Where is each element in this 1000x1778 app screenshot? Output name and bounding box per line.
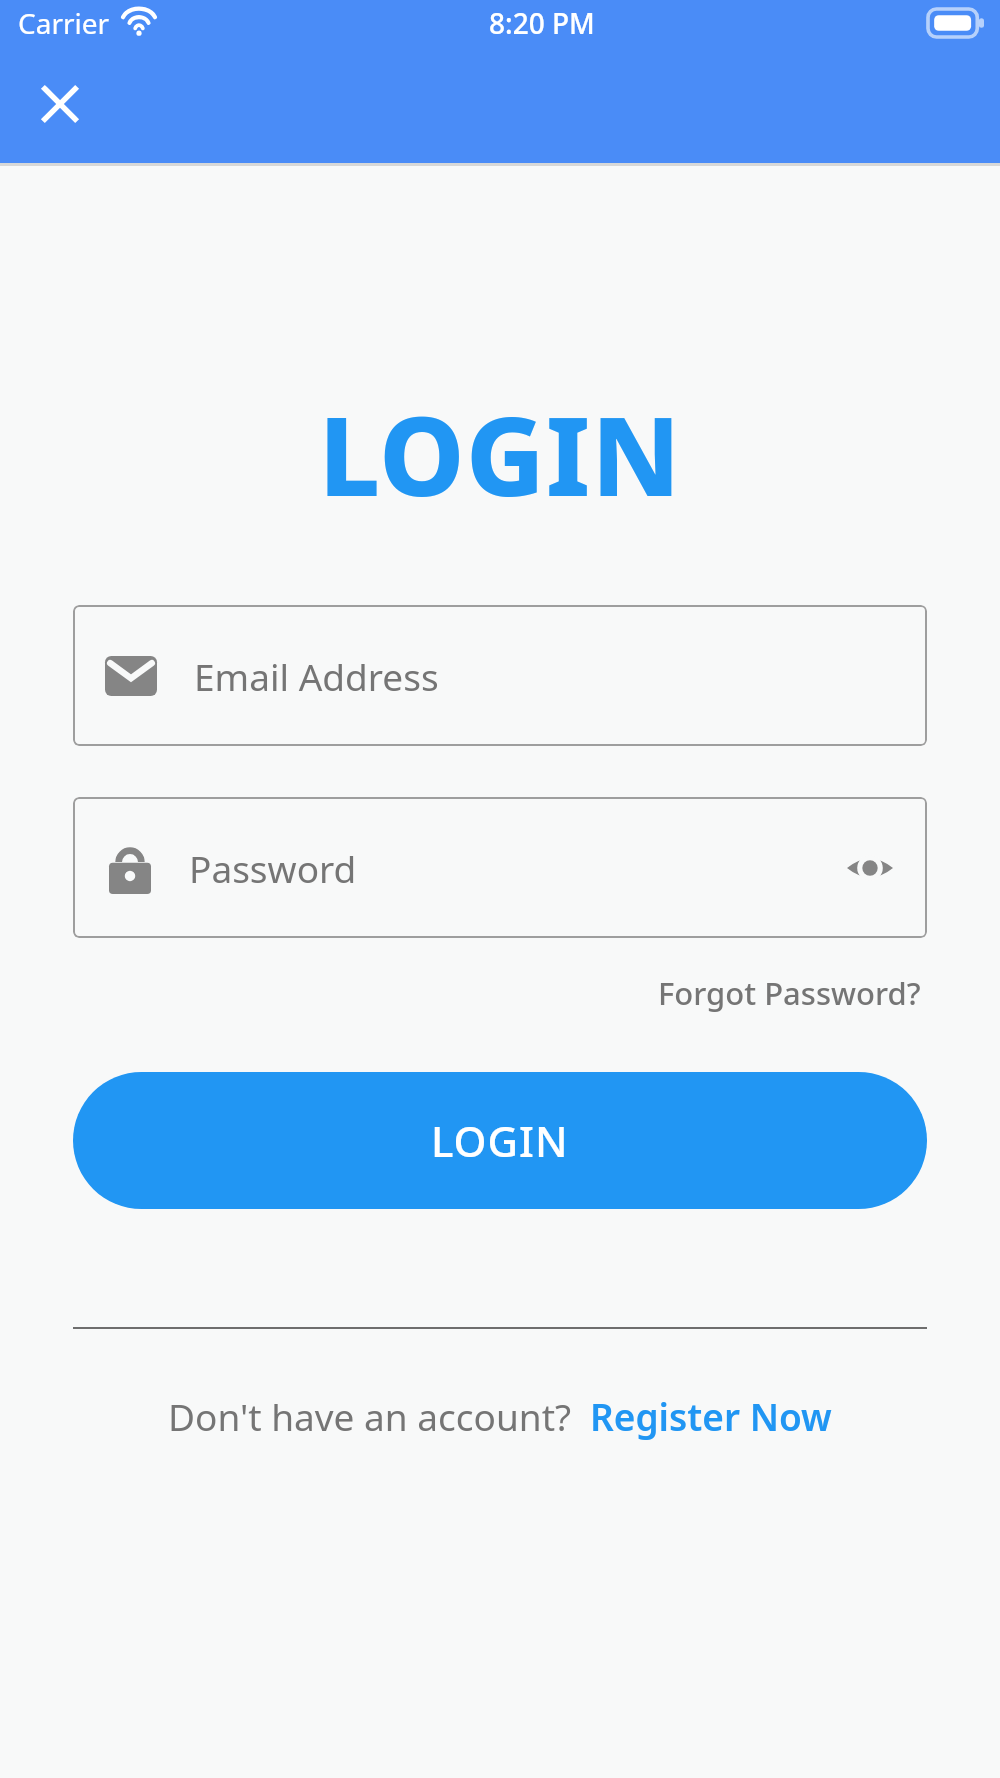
- staticText: 8:20 PM: [489, 4, 595, 42]
- staticText: Password: [189, 843, 357, 893]
- staticText: Email Address: [194, 651, 439, 701]
- button[interactable]: LOGIN: [73, 1072, 927, 1209]
- staticText: Register Now: [590, 1391, 832, 1441]
- staticText: Carrier: [18, 4, 110, 42]
- staticText: Forgot Password?: [658, 972, 921, 1014]
- button[interactable]: Forgot Password?: [652, 966, 927, 1020]
- staticText: LOGIN: [431, 1112, 569, 1169]
- button[interactable]: Show password: [841, 839, 899, 897]
- button[interactable]: Password: [73, 797, 927, 938]
- button[interactable]: Register Now: [590, 1391, 832, 1441]
- button[interactable]: Close: [22, 66, 98, 142]
- button[interactable]: Email Address: [73, 605, 927, 746]
- staticText: LOGIN: [73, 381, 927, 528]
- staticText: Don't have an account?: [168, 1391, 572, 1441]
